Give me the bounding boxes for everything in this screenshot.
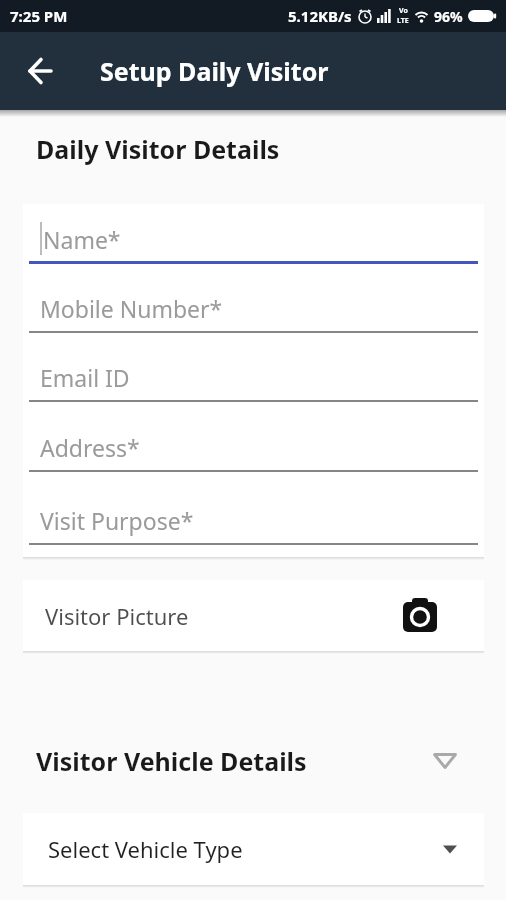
- staticText: LTE: [397, 16, 409, 26]
- button[interactable]: Visitor Picture: [23, 580, 484, 651]
- button[interactable]: Name*: [23, 204, 484, 264]
- button[interactable]: [433, 753, 457, 769]
- button[interactable]: Email ID: [23, 333, 484, 402]
- button[interactable]: Visit Purpose*: [23, 472, 484, 545]
- staticText: Visitor Picture: [45, 601, 189, 631]
- staticText: Mobile Number*: [40, 293, 223, 324]
- button[interactable]: Address*: [23, 402, 484, 472]
- staticText: Address*: [40, 432, 140, 463]
- staticText: Vo: [399, 6, 408, 16]
- staticText: 5.12KB/s: [288, 6, 352, 26]
- button[interactable]: Mobile Number*: [23, 264, 484, 333]
- staticText: 7:25 PM: [10, 6, 68, 26]
- staticText: 96%: [434, 7, 463, 26]
- staticText: Daily Visitor Details: [36, 132, 280, 166]
- staticText: Setup Daily Visitor: [100, 54, 329, 88]
- staticText: Visit Purpose*: [40, 505, 194, 536]
- staticText: Visitor Vehicle Details: [36, 744, 307, 778]
- staticText: Select Vehicle Type: [48, 834, 243, 864]
- button[interactable]: Select Vehicle Type: [23, 813, 484, 885]
- staticText: Name*: [43, 224, 121, 255]
- button[interactable]: [29, 58, 52, 84]
- staticText: Email ID: [40, 362, 130, 393]
